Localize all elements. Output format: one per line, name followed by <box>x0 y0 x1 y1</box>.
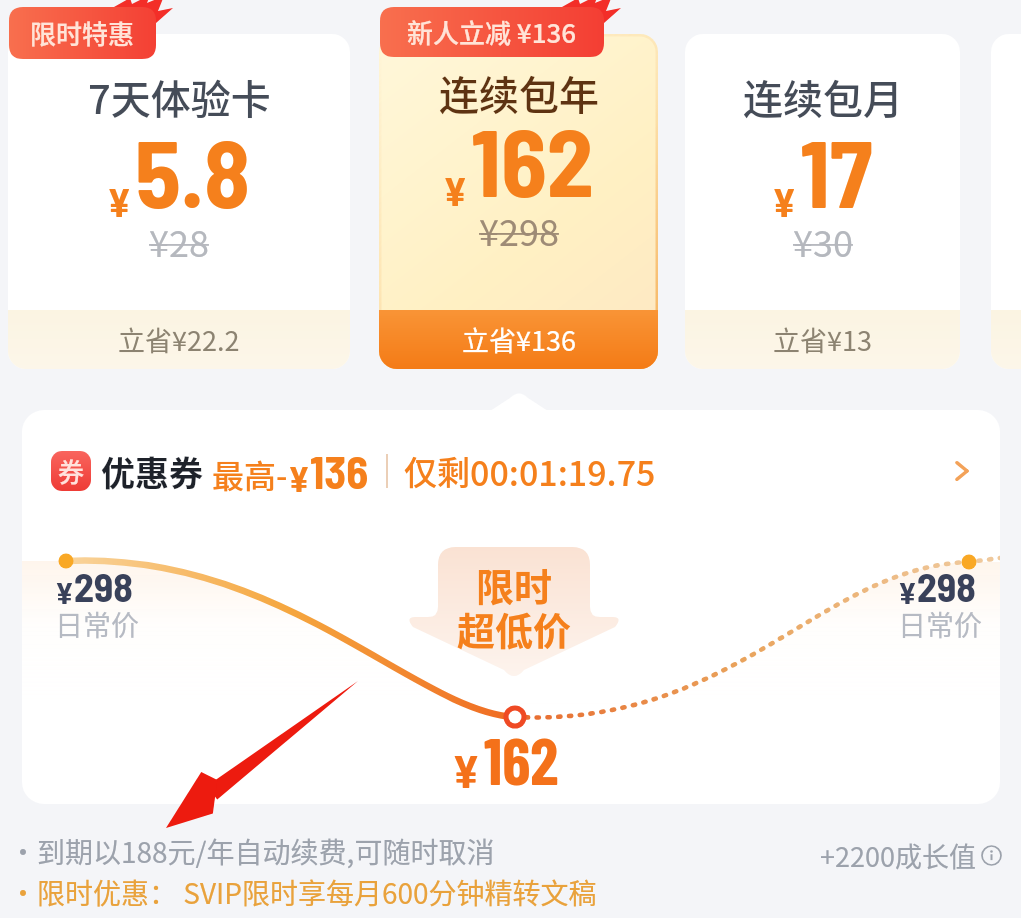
staticText: 限时特惠 <box>30 14 135 52</box>
staticText: 限时 <box>476 557 553 612</box>
staticText: ·限时优惠： SVIP限时享每月600分钟精转文稿 <box>9 872 597 913</box>
other: 查看优惠券 <box>946 455 978 487</box>
staticText: 17 <box>800 114 873 227</box>
staticText: 立省¥22.2 <box>118 320 240 359</box>
staticText: 298 <box>74 562 133 610</box>
staticText: ¥ <box>443 166 468 214</box>
staticText: ¥ <box>898 573 917 610</box>
staticText: 立省¥136 <box>462 320 576 359</box>
staticText: 7天体验卡 <box>88 68 271 126</box>
staticText: ¥ <box>452 742 480 797</box>
button[interactable]: 券 <box>22 410 1000 532</box>
staticText: 连续包月 <box>743 68 903 126</box>
staticText: ·到期以188元/年自动续费,可随时取消 <box>9 831 495 872</box>
staticText: 5.8 <box>135 114 251 227</box>
staticText: 最高- <box>212 451 288 497</box>
staticText: ¥ <box>107 177 132 225</box>
button[interactable]: ¥ <box>991 34 1021 369</box>
staticText: ¥ <box>772 177 797 225</box>
staticText: 连续包年 <box>439 64 599 122</box>
staticText: 136 <box>310 444 369 498</box>
staticText: 券 <box>58 452 85 490</box>
staticText: ¥ <box>55 573 74 610</box>
button[interactable]: 7天体验卡 <box>8 34 350 369</box>
staticText: 仅剩 <box>404 447 470 495</box>
staticText: 298 <box>917 562 976 610</box>
staticText: 超低价 <box>457 601 572 656</box>
staticText: 新人立减 ¥136 <box>407 13 577 51</box>
staticText: 162 <box>484 721 559 798</box>
button[interactable]: 连续包月 <box>685 34 960 369</box>
staticText: ¥30 <box>793 215 853 267</box>
staticText: 日常价 <box>55 604 140 645</box>
staticText: 立省¥13 <box>773 320 872 359</box>
staticText: 优惠券 <box>101 447 203 496</box>
button[interactable]: 连续包年 <box>379 34 658 369</box>
staticText: 162 <box>471 103 594 216</box>
staticText: ¥298 <box>479 204 559 256</box>
staticText: 日常价 <box>898 604 983 645</box>
staticText: 00:01:19.75 <box>470 447 656 496</box>
staticText: +2200成长值 <box>820 836 976 875</box>
staticText: ¥28 <box>149 215 209 267</box>
staticText: ¥ <box>288 456 310 499</box>
